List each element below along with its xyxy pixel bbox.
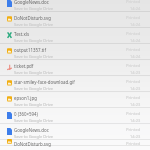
staticText: Printed xyxy=(126,79,141,85)
staticText: 0 (360×594) xyxy=(14,111,38,117)
staticText: Printed xyxy=(126,0,141,5)
staticText: star-smiley-face-download.gif xyxy=(14,79,75,85)
staticText: epson1.jpg xyxy=(14,95,37,101)
button[interactable]: ticket.pdf xyxy=(0,60,150,76)
staticText: Save to Google Drive xyxy=(14,22,54,27)
staticText: Printed xyxy=(126,15,141,21)
staticText: Save to Google Drive xyxy=(14,86,54,91)
staticText: Printed xyxy=(126,127,141,133)
staticText: Printed xyxy=(126,63,141,69)
staticText: 14:24 xyxy=(130,38,141,43)
staticText: DoNotDisturb.svg xyxy=(14,141,51,147)
button[interactable]: DoNotDisturb.svg xyxy=(0,12,150,28)
staticText: 14:24 xyxy=(130,22,141,27)
staticText: Save to Google Drive xyxy=(14,134,54,139)
staticText: Save to Google Drive xyxy=(14,6,54,11)
staticText: Save to Google Drive xyxy=(14,118,54,123)
staticText: 14:23 xyxy=(130,86,141,91)
button[interactable]: DoNotDisturb.svg xyxy=(0,140,150,146)
button[interactable]: Test.xls xyxy=(0,28,150,44)
staticText: GoogleNews.doc xyxy=(14,0,49,5)
staticText: Test.xls xyxy=(14,31,30,37)
staticText: 14:23 xyxy=(130,118,141,123)
staticText: output11357.tif xyxy=(14,47,46,53)
button[interactable]: output11357.tif xyxy=(0,44,150,60)
staticText: Save to Google Drive xyxy=(14,54,54,59)
staticText: Save to Google Drive xyxy=(14,70,54,75)
staticText: Printed xyxy=(126,111,141,117)
staticText: Save to Google Drive xyxy=(14,38,54,43)
staticText: Printed xyxy=(126,47,141,53)
staticText: Printed xyxy=(126,141,141,147)
button[interactable]: star-smiley-face-download.gif xyxy=(0,76,150,92)
staticText: Save to Google Drive xyxy=(14,102,54,107)
staticText: 14:23 xyxy=(130,70,141,75)
staticText: 14:24 xyxy=(130,6,141,11)
button[interactable]: GoogleNews.doc xyxy=(0,124,150,140)
staticText: 14:23 xyxy=(130,102,141,107)
staticText: 14:24 xyxy=(130,54,141,59)
staticText: Printed xyxy=(126,95,141,101)
button[interactable]: GoogleNews.doc xyxy=(0,0,150,12)
button[interactable]: 0 (360×594) xyxy=(0,108,150,124)
staticText: GoogleNews.doc xyxy=(14,127,49,133)
staticText: DoNotDisturb.svg xyxy=(14,15,51,21)
staticText: 14:23 xyxy=(130,134,141,139)
button[interactable]: epson1.jpg xyxy=(0,92,150,108)
staticText: ticket.pdf xyxy=(14,63,34,69)
staticText: Printed xyxy=(126,31,141,37)
